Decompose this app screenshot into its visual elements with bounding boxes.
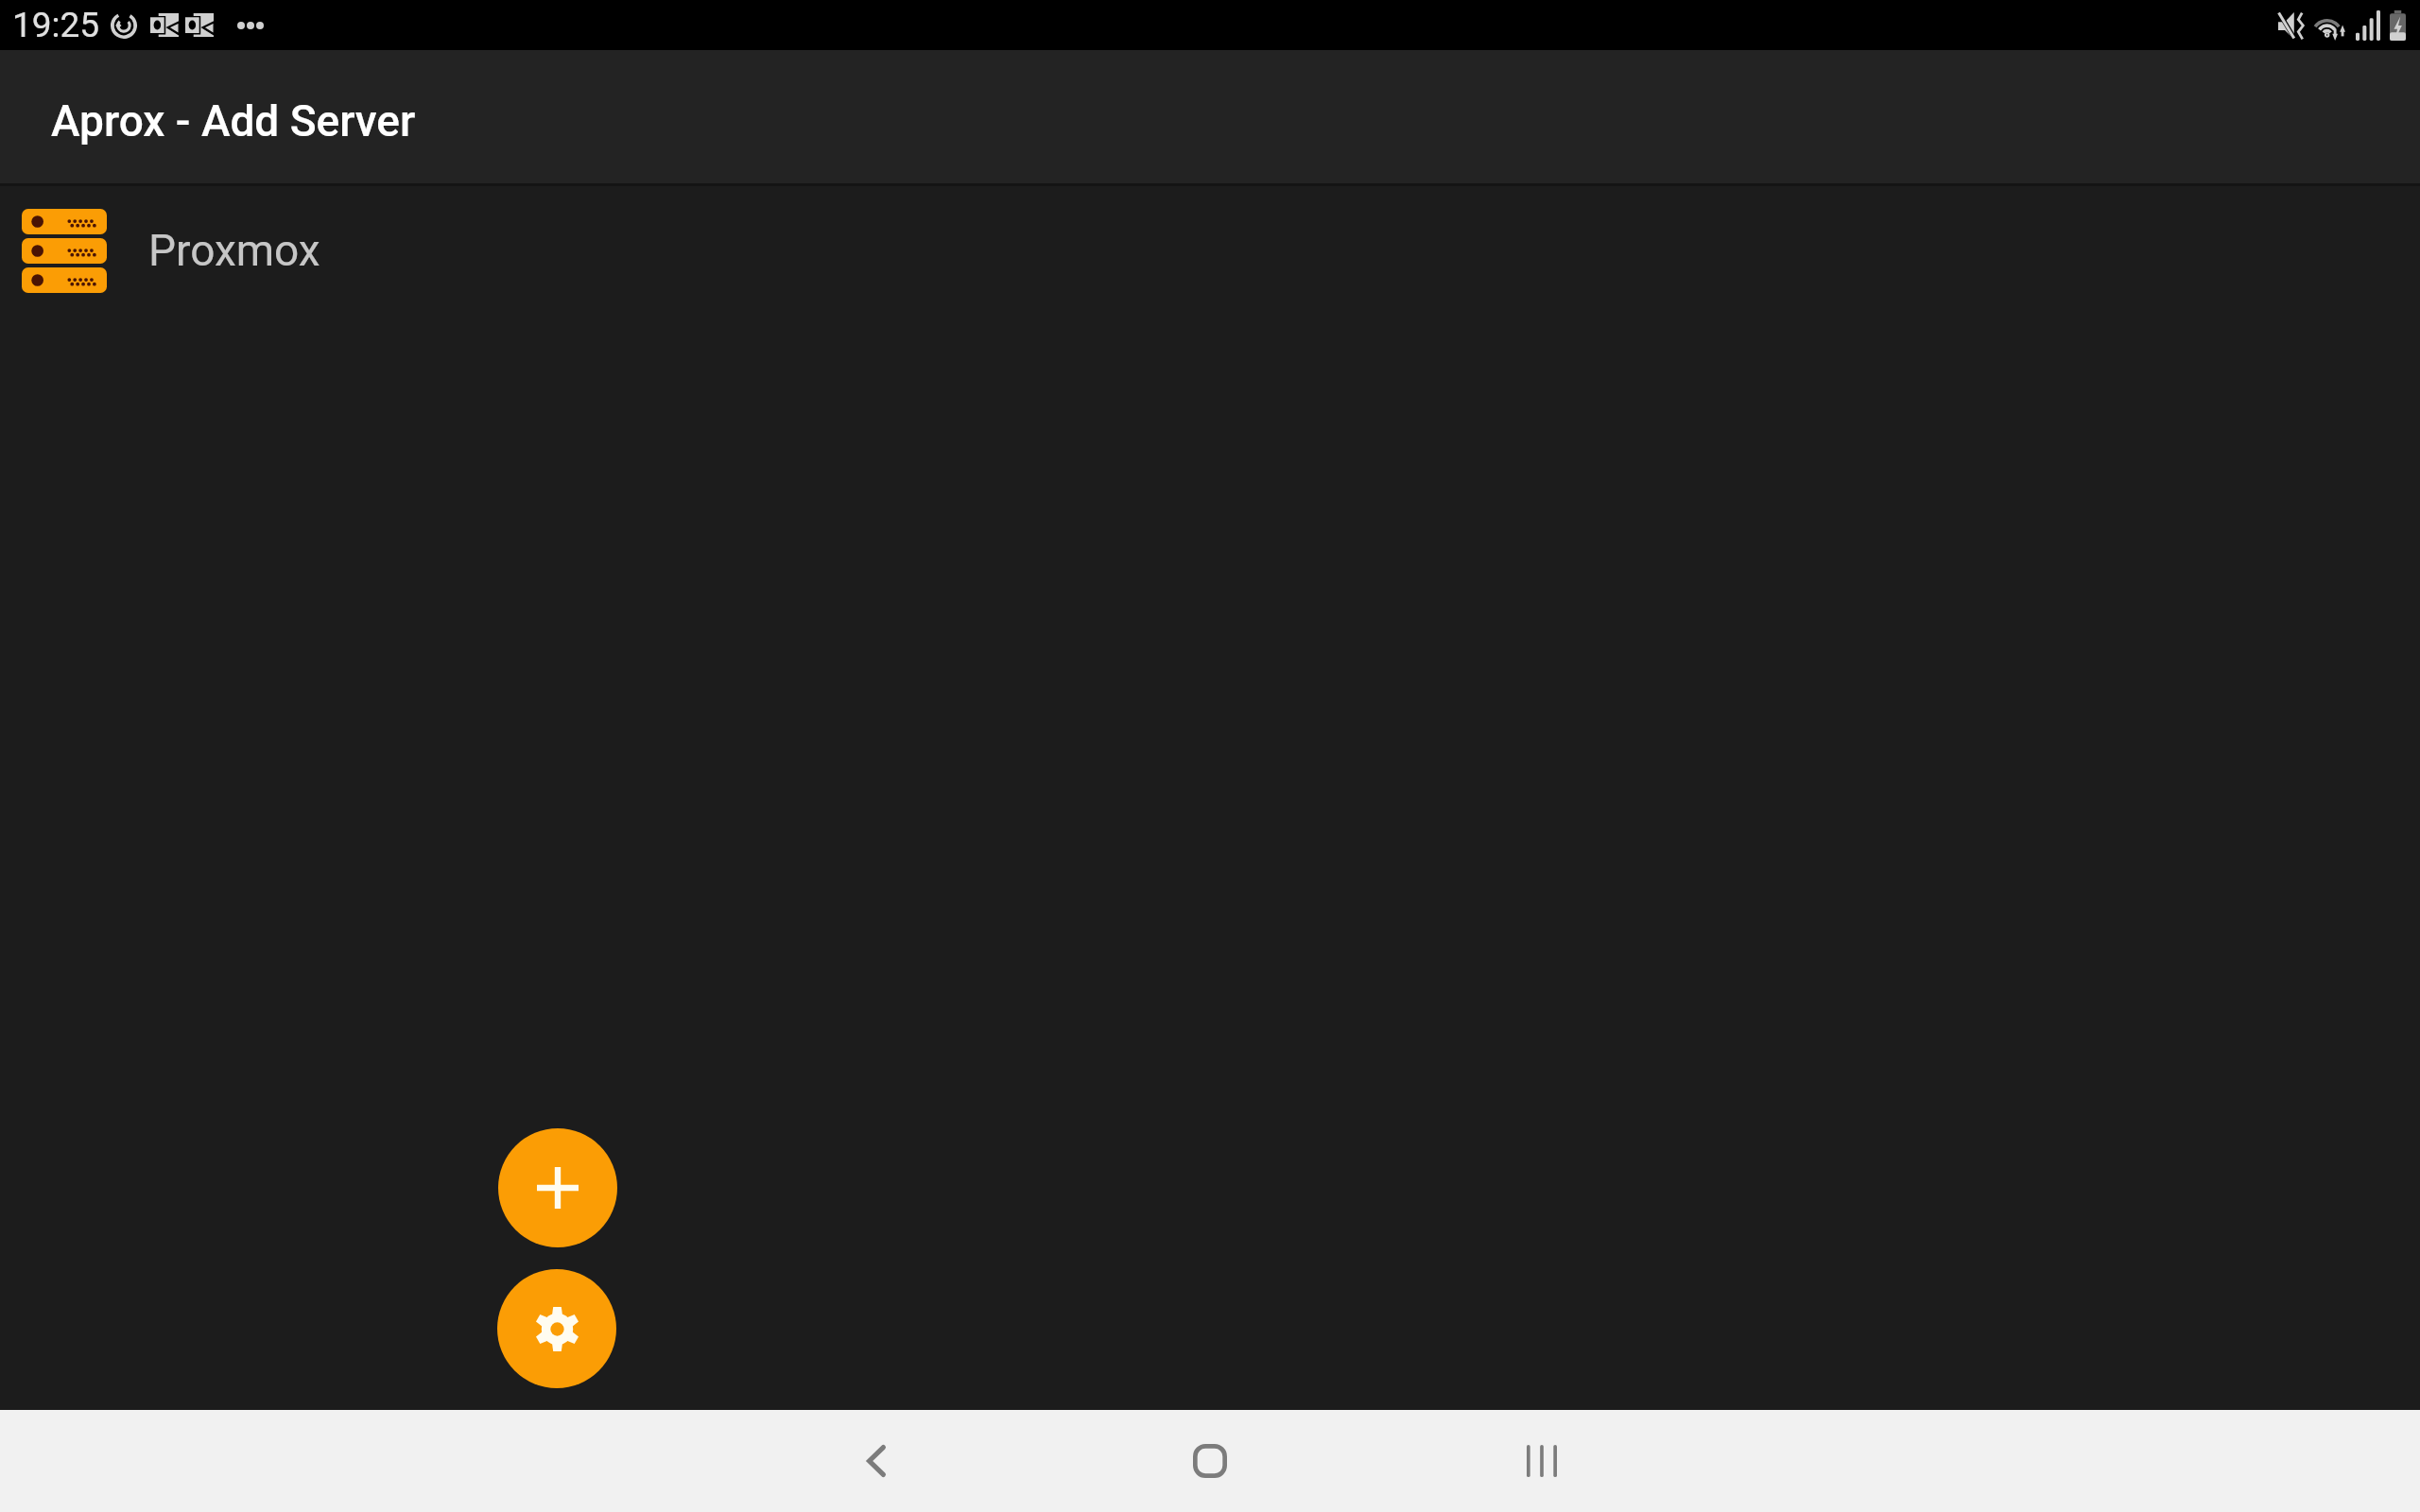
button[interactable]: Back [829,1414,924,1508]
staticText: 19:25 [12,5,100,45]
button[interactable]: Proxmox [0,186,2420,315]
button[interactable]: Home [1163,1414,1257,1508]
button[interactable]: Add server [498,1128,617,1247]
staticText: Proxmox [148,225,320,276]
staticText: Aprox - Add Server [51,95,416,146]
button[interactable]: Settings [497,1269,616,1388]
button[interactable]: Recent apps [1495,1414,1589,1508]
